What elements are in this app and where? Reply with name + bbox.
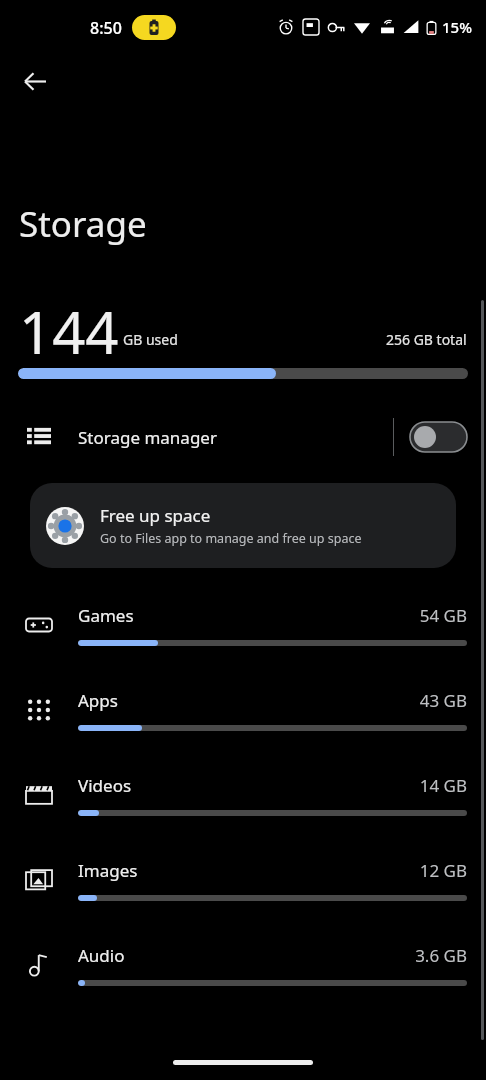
button[interactable]: Free up space	[30, 483, 456, 568]
staticText: 43 GB	[419, 689, 467, 712]
staticText: 8:50	[90, 17, 122, 39]
staticText: Images	[78, 859, 138, 882]
staticText: 15%	[442, 17, 472, 37]
button[interactable]: Storage manager toggle	[410, 422, 467, 452]
staticText: Free up space	[100, 504, 211, 527]
button[interactable]: Back	[8, 54, 62, 108]
button[interactable]: Audio	[0, 922, 486, 1007]
staticText: 3.6 GB	[415, 944, 467, 967]
staticText: Games	[78, 604, 134, 627]
staticText: Storage manager	[78, 426, 217, 449]
button[interactable]: Storage manager	[0, 409, 486, 465]
button[interactable]: Videos	[0, 752, 486, 837]
staticText: Go to Files app to manage and free up sp…	[100, 530, 362, 547]
staticText: 54 GB	[419, 604, 467, 627]
staticText: Apps	[78, 689, 118, 712]
staticText: Audio	[78, 944, 125, 967]
staticText: Videos	[78, 774, 132, 797]
staticText: 144	[19, 292, 119, 354]
staticText: 12 GB	[419, 859, 467, 882]
button[interactable]: Games	[0, 582, 486, 667]
staticText: 256 GB total	[386, 330, 467, 349]
staticText: 14 GB	[419, 774, 467, 797]
staticText: Storage	[19, 200, 147, 248]
staticText: GB used	[123, 330, 178, 349]
button[interactable]: Apps	[0, 667, 486, 752]
button[interactable]: Images	[0, 837, 486, 922]
